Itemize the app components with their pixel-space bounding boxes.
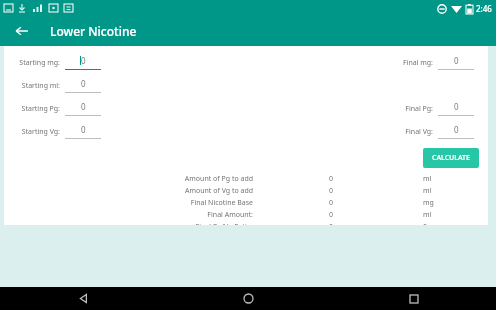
button[interactable]: Back [10, 19, 34, 43]
staticText: Final Pg/Vg Ratio: [4, 222, 253, 225]
staticText: Final Nicotine Base [4, 198, 253, 208]
staticText: 0 [423, 222, 428, 225]
button[interactable]: 0 [438, 124, 474, 139]
button[interactable]: 0 [438, 55, 474, 70]
staticText: 0 [329, 186, 349, 196]
staticText: Final Vg: [389, 127, 433, 137]
staticText: Final Pg: [389, 104, 433, 114]
staticText: 0 [454, 101, 459, 112]
button[interactable]: CALCULATE [423, 148, 479, 168]
staticText: ml [423, 186, 432, 196]
staticText: ml [423, 210, 432, 220]
staticText: Final mg: [389, 58, 433, 68]
staticText: 0 [329, 222, 349, 225]
staticText: Lower Nicotine [50, 23, 137, 39]
staticText: Starting Pg: [8, 104, 60, 114]
staticText: ml [423, 174, 432, 184]
button[interactable]: Back [0, 287, 166, 310]
staticText: 0 [329, 198, 349, 208]
staticText: 0 [81, 124, 86, 135]
staticText: Final Amount: [4, 210, 253, 220]
staticText: Starting Vg: [8, 127, 60, 137]
staticText: 0 [329, 210, 349, 220]
staticText: Amount of Vg to add [4, 186, 253, 196]
button[interactable]: 0 [65, 78, 101, 93]
staticText: 0 [81, 55, 86, 66]
staticText: 2:46 [476, 3, 492, 14]
button[interactable]: Home [166, 287, 331, 310]
button[interactable]: 0 [65, 124, 101, 139]
button[interactable]: 0 [438, 101, 474, 116]
staticText: Amount of Pg to add [4, 174, 253, 184]
staticText: Starting mg: [8, 58, 60, 68]
staticText: mg [423, 198, 434, 208]
staticText: 0 [454, 124, 459, 135]
button[interactable]: 0 [65, 101, 101, 116]
staticText: 0 [329, 174, 349, 184]
staticText: 0 [81, 78, 86, 89]
button[interactable]: 0 [65, 55, 101, 70]
button[interactable]: Recent apps [331, 287, 496, 310]
staticText: Starting ml: [8, 81, 60, 91]
staticText: CALCULATE [432, 153, 470, 163]
staticText: 0 [454, 55, 459, 66]
staticText: 0 [81, 101, 86, 112]
